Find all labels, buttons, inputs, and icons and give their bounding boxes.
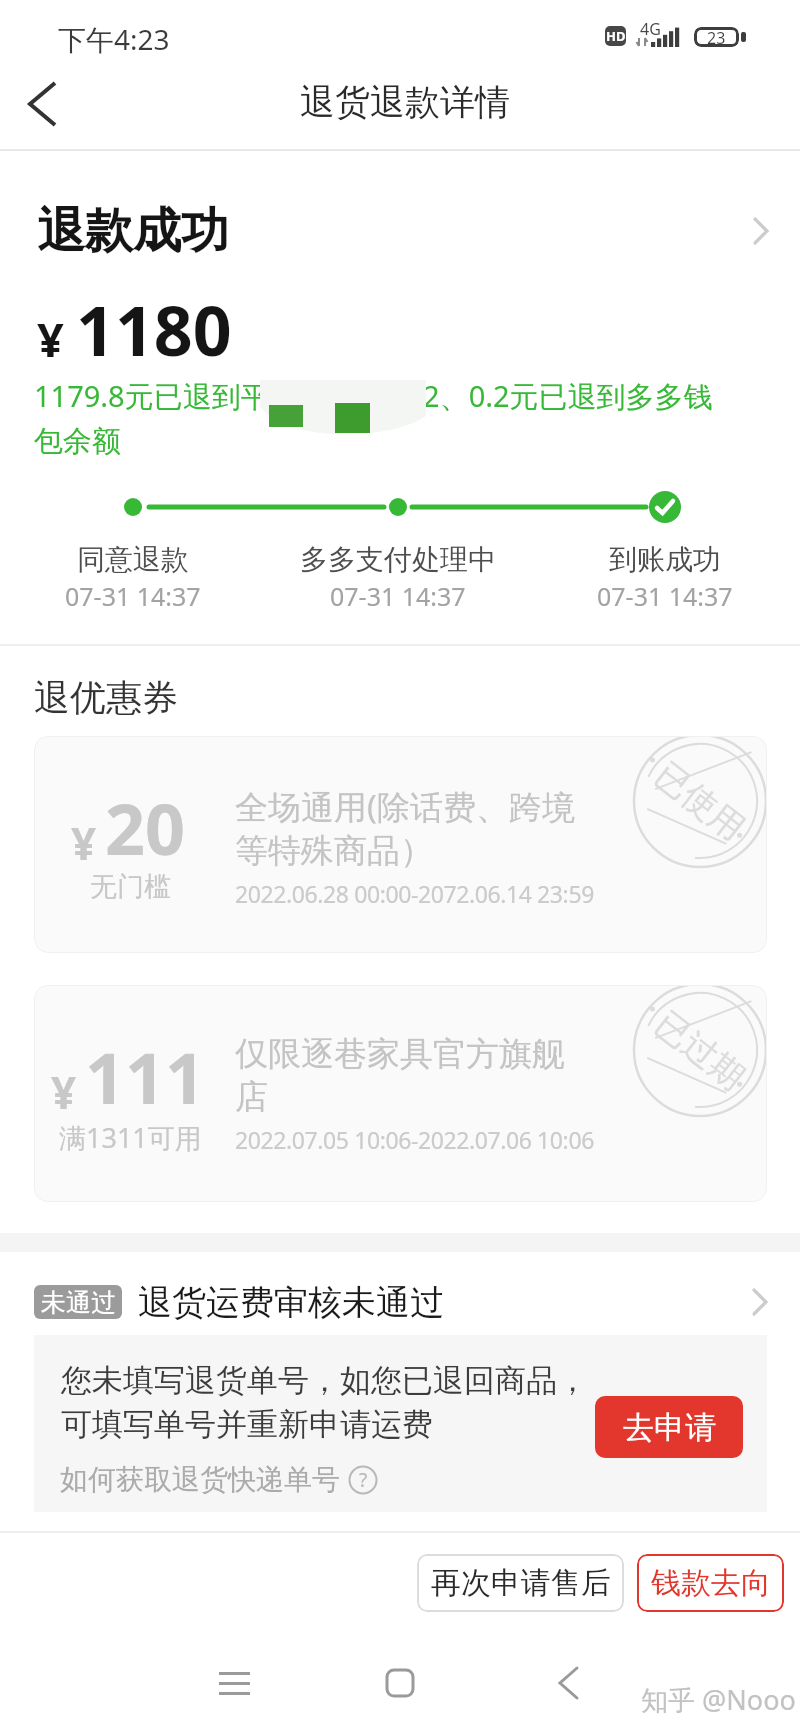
staticText: 无门槛 bbox=[90, 870, 171, 904]
staticText: 仅限逐巷家具官方旗舰 店 bbox=[235, 1033, 565, 1118]
staticText: 退货运费审核未通过 bbox=[138, 1281, 444, 1324]
staticText: 未通过 bbox=[41, 1287, 116, 1318]
button[interactable]: Back bbox=[542, 1657, 594, 1709]
staticText: 1180 bbox=[76, 283, 232, 376]
staticText: HD bbox=[606, 27, 626, 45]
staticText: 同意退款 bbox=[77, 542, 189, 577]
button[interactable]: ¥ bbox=[34, 985, 767, 1202]
staticText: 如何获取退货快递单号 bbox=[60, 1462, 340, 1497]
staticText: 1179.8元已退到平安银行09392、0.2元已退到多多钱包余额 bbox=[34, 376, 734, 459]
staticText: 已过期 bbox=[647, 1002, 753, 1099]
staticText: 2022.06.28 00:00-2072.06.14 23:59 bbox=[235, 878, 594, 909]
staticText: 07-31 14:37 bbox=[65, 579, 201, 613]
staticText: ¥ bbox=[51, 1062, 77, 1122]
staticText: 满1311可用 bbox=[59, 1119, 202, 1156]
staticText: 07-31 14:37 bbox=[597, 579, 733, 613]
staticText: 07-31 14:37 bbox=[330, 579, 466, 613]
button[interactable]: 钱款去向 bbox=[637, 1554, 784, 1612]
staticText: 20 bbox=[105, 780, 186, 875]
button[interactable]: ¥ bbox=[34, 736, 767, 953]
staticText: 下午4:23 bbox=[58, 20, 170, 58]
staticText: 多多支付处理中 bbox=[300, 542, 496, 577]
staticText: ? bbox=[359, 1467, 368, 1493]
staticText: 2022.07.05 10:06-2022.07.06 10:06 bbox=[235, 1124, 594, 1155]
staticText: ¥ bbox=[37, 307, 64, 371]
staticText: 知乎 @Nooo bbox=[641, 1681, 796, 1718]
button[interactable]: Back bbox=[0, 62, 84, 146]
staticText: 已使用 bbox=[647, 753, 753, 850]
button[interactable]: Recents bbox=[208, 1657, 260, 1709]
staticText: 退款成功 bbox=[37, 201, 229, 261]
button[interactable]: Details bbox=[739, 209, 783, 253]
staticText: ¥ bbox=[71, 813, 97, 873]
staticText: 到账成功 bbox=[609, 542, 721, 577]
button[interactable]: 再次申请售后 bbox=[417, 1554, 624, 1612]
staticText: 4G bbox=[640, 18, 661, 40]
staticText: 再次申请售后 bbox=[431, 1564, 611, 1602]
staticText: 退货退款详情 bbox=[300, 80, 510, 124]
staticText: 去申请 bbox=[623, 1408, 716, 1447]
staticText: 您未填写退货单号，如您已退回商品， bbox=[61, 1361, 588, 1400]
staticText: 可填写单号并重新申请运费 bbox=[61, 1405, 433, 1444]
button[interactable]: 未通过 bbox=[34, 1277, 766, 1327]
staticText: 钱款去向 bbox=[651, 1564, 771, 1602]
staticText: 111 bbox=[85, 1029, 206, 1124]
staticText: 23 bbox=[707, 27, 726, 47]
button[interactable]: 去申请 bbox=[595, 1396, 743, 1458]
button[interactable]: Home bbox=[374, 1657, 426, 1709]
staticText: 全场通用(除话费、跨境 等特殊商品） bbox=[235, 784, 575, 872]
staticText: 退优惠券 bbox=[34, 675, 178, 720]
